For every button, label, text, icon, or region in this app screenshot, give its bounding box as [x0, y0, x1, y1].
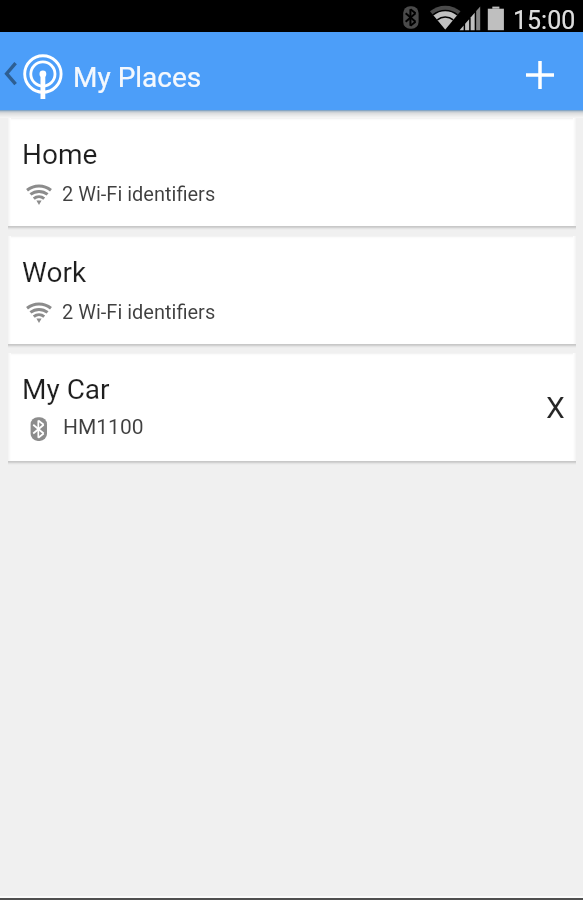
button[interactable]: My Car — [8, 353, 576, 461]
button[interactable]: Remove place — [533, 385, 576, 429]
staticText: My Places — [73, 61, 202, 94]
button[interactable]: Navigate up — [0, 61, 22, 89]
staticText: My Car — [22, 373, 110, 406]
staticText: 2 Wi-Fi identifiers — [62, 300, 216, 323]
staticText: 15:00 — [513, 6, 576, 35]
button[interactable]: Home — [8, 118, 576, 226]
staticText: HM1100 — [63, 415, 144, 440]
button[interactable]: Work — [8, 236, 576, 344]
staticText: Home — [22, 138, 98, 171]
staticText: 2 Wi-Fi identifiers — [62, 182, 216, 205]
staticText: X — [546, 390, 565, 425]
button[interactable]: Add place — [516, 51, 564, 99]
staticText: Work — [22, 256, 87, 289]
